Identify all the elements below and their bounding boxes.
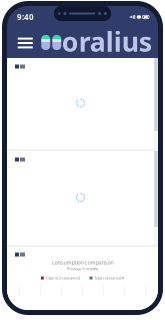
staticText: Consumption comparison — [51, 259, 113, 266]
button[interactable]: Chart options — [15, 64, 25, 69]
button[interactable]: Chart options — [15, 252, 25, 257]
button[interactable]: Moralius home — [41, 32, 152, 54]
staticText: oralius — [62, 24, 152, 59]
button[interactable]: Chart options — [15, 157, 25, 162]
staticText: Previous 6 months — [66, 266, 98, 271]
staticText: 9:40 — [17, 12, 34, 22]
staticText: Total consumed $ — [94, 275, 124, 281]
button[interactable]: Menu — [17, 36, 33, 49]
staticText: Total m3 consumed — [45, 275, 79, 281]
